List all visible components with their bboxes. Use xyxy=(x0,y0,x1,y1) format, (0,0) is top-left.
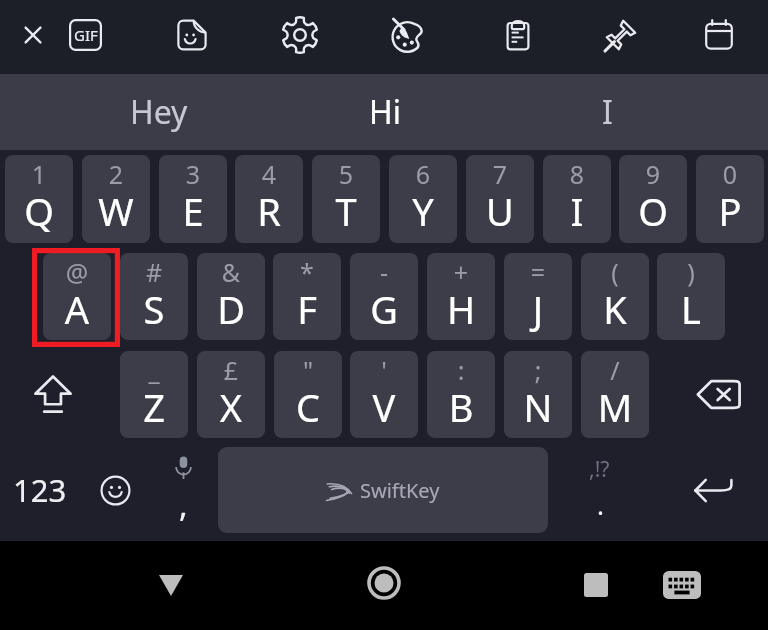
button[interactable]: 1 xyxy=(5,155,73,243)
staticText: H xyxy=(427,283,495,335)
staticText: J xyxy=(504,283,572,335)
staticText: F xyxy=(273,283,341,335)
button[interactable]: Backspace xyxy=(670,351,766,438)
staticText: L xyxy=(657,283,725,335)
staticText: 7 xyxy=(466,157,534,191)
button[interactable]: Punctuation xyxy=(560,447,640,533)
button[interactable]: _ xyxy=(120,351,188,438)
staticText: C xyxy=(274,381,342,433)
button[interactable]: & xyxy=(197,253,265,340)
button[interactable]: 9 xyxy=(619,155,687,243)
staticText: ; xyxy=(504,353,572,387)
staticText: M xyxy=(581,381,649,433)
button[interactable]: : xyxy=(427,351,495,438)
button[interactable]: Voice input xyxy=(155,447,213,533)
button[interactable]: # xyxy=(120,253,188,340)
button[interactable]: @ xyxy=(43,253,111,340)
button[interactable]: £ xyxy=(197,351,265,438)
staticText: & xyxy=(197,255,265,289)
button[interactable]: - xyxy=(350,253,418,340)
button[interactable]: Switch keyboard xyxy=(652,556,712,614)
button[interactable]: 5 xyxy=(312,155,380,243)
button[interactable]: 8 xyxy=(543,155,611,243)
button[interactable]: 3 xyxy=(159,155,227,243)
staticText: K xyxy=(581,283,649,335)
staticText: V xyxy=(350,381,418,433)
staticText: - xyxy=(350,255,418,289)
staticText: # xyxy=(120,255,188,289)
button[interactable]: I xyxy=(494,74,720,150)
button[interactable]: + xyxy=(427,253,495,340)
staticText: 0 xyxy=(696,157,764,191)
button[interactable]: Recents xyxy=(566,556,626,614)
button[interactable]: 123 xyxy=(3,447,76,533)
button[interactable]: " xyxy=(274,351,342,438)
button[interactable]: ) xyxy=(657,253,725,340)
staticText: I xyxy=(543,185,611,237)
button[interactable]: Shift xyxy=(5,351,100,438)
staticText: E xyxy=(159,185,227,237)
button[interactable]: * xyxy=(273,253,341,340)
staticText: ) xyxy=(657,255,725,289)
staticText: ,!? xyxy=(589,455,610,484)
button[interactable]: Hi xyxy=(272,74,498,150)
staticText: A xyxy=(43,283,111,335)
staticText: = xyxy=(504,255,572,289)
button[interactable]: = xyxy=(504,253,572,340)
staticText: SwiftKey xyxy=(360,477,440,504)
button[interactable]: Enter xyxy=(660,447,766,533)
button[interactable]: Calendar xyxy=(693,9,745,61)
button[interactable]: Back xyxy=(141,556,201,614)
staticText: X xyxy=(197,381,265,433)
staticText: 4 xyxy=(235,157,303,191)
staticText: 3 xyxy=(159,157,227,191)
staticText: 9 xyxy=(619,157,687,191)
button[interactable]: Home xyxy=(354,554,414,612)
staticText: £ xyxy=(197,353,265,387)
staticText: . xyxy=(597,487,604,522)
staticText: ( xyxy=(581,255,649,289)
staticText: * xyxy=(273,255,341,289)
staticText: Hey xyxy=(130,90,188,134)
staticText: 8 xyxy=(543,157,611,191)
button[interactable]: Emoji xyxy=(85,447,145,533)
staticText: O xyxy=(619,185,687,237)
staticText: U xyxy=(466,185,534,237)
staticText: _ xyxy=(120,353,188,387)
button[interactable]: 7 xyxy=(466,155,534,243)
staticText: N xyxy=(504,381,572,433)
staticText: 6 xyxy=(389,157,457,191)
button[interactable]: 4 xyxy=(235,155,303,243)
button[interactable]: 0 xyxy=(696,155,764,243)
staticText: S xyxy=(120,283,188,335)
staticText: : xyxy=(427,353,495,387)
staticText: / xyxy=(581,353,649,387)
staticText: 2 xyxy=(82,157,150,191)
button[interactable]: Close xyxy=(7,9,59,61)
button[interactable]: ( xyxy=(581,253,649,340)
staticText: " xyxy=(274,353,342,387)
button[interactable]: Settings xyxy=(274,9,326,61)
button[interactable]: ; xyxy=(504,351,572,438)
button[interactable]: / xyxy=(581,351,649,438)
staticText: 1 xyxy=(5,157,73,191)
button[interactable]: Clipboard xyxy=(492,9,544,61)
staticText: B xyxy=(427,381,495,433)
button[interactable]: Hey xyxy=(46,74,272,150)
staticText: T xyxy=(312,185,380,237)
button[interactable]: 6 xyxy=(389,155,457,243)
button[interactable]: Themes xyxy=(383,9,435,61)
staticText: R xyxy=(235,185,303,237)
staticText: Q xyxy=(5,185,73,237)
staticText: Y xyxy=(389,185,457,237)
button[interactable]: Space xyxy=(218,447,548,533)
button[interactable]: GIF xyxy=(59,9,111,61)
button[interactable]: Pin xyxy=(595,9,647,61)
button[interactable]: 2 xyxy=(82,155,150,243)
staticText: + xyxy=(427,255,495,289)
staticText: W xyxy=(82,185,150,237)
staticText: P xyxy=(696,185,764,237)
button[interactable]: ' xyxy=(350,351,418,438)
button[interactable]: Stickers xyxy=(166,9,218,61)
staticText: G xyxy=(350,283,418,335)
